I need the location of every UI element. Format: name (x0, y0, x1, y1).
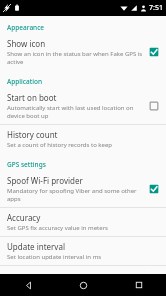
staticText: Application (7, 77, 43, 86)
button[interactable]: Spoof Wi-Fi provider (0, 171, 166, 207)
button[interactable]: Update interval (0, 237, 166, 265)
staticText: Show an icon in the status bar when Fake… (7, 50, 144, 66)
button[interactable]: Home (56, 274, 111, 296)
staticText: Set a count of history records to keep (7, 141, 113, 149)
staticText: Mandatory for spoofing Viber and some ot… (7, 187, 144, 203)
staticText: Accuracy (7, 212, 41, 223)
staticText: History count (7, 129, 58, 140)
staticText: 7:51 (149, 3, 163, 13)
staticText: Appearance (7, 23, 45, 32)
staticText: GPS settings (7, 160, 46, 169)
button[interactable]: History count (0, 125, 166, 153)
staticText: Set location update interval in ms (7, 253, 102, 261)
staticText: Spoof Wi-Fi provider (7, 175, 83, 186)
staticText: Automatically start with last used locat… (7, 104, 144, 120)
staticText: Set GPS fix accuracy value in meters (7, 224, 108, 232)
button[interactable]: Recent apps (111, 274, 166, 296)
staticText: Show icon (7, 38, 46, 49)
button[interactable]: Start on boot (0, 88, 166, 124)
staticText: Start on boot (7, 92, 57, 103)
button[interactable]: Show icon (0, 34, 166, 70)
button[interactable]: Back (0, 274, 56, 296)
staticText: Update interval (7, 241, 65, 252)
button[interactable]: Accuracy (0, 208, 166, 236)
